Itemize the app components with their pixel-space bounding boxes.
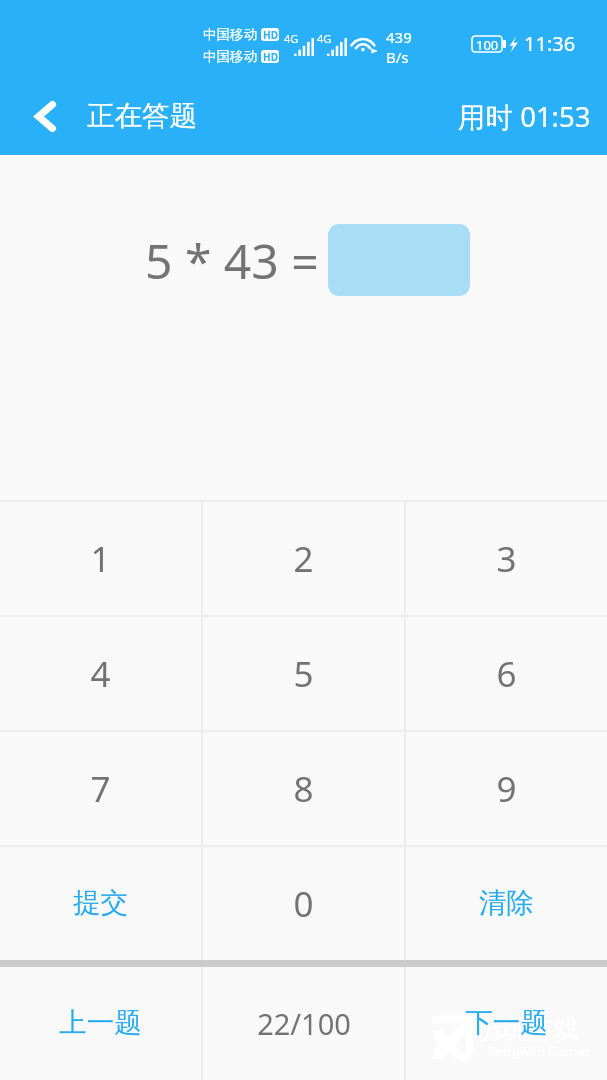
staticText: 用时 01:53 bbox=[458, 98, 591, 136]
staticText: 100 bbox=[476, 36, 499, 52]
button[interactable]: 3 bbox=[406, 502, 607, 615]
staticText: 3 bbox=[496, 535, 517, 583]
button[interactable]: 6 bbox=[406, 617, 607, 730]
staticText: 中国移动 bbox=[203, 26, 257, 43]
button[interactable]: 1 bbox=[0, 502, 201, 615]
staticText: HD bbox=[263, 50, 278, 63]
staticText: 8 bbox=[293, 765, 314, 813]
staticText: 0 bbox=[293, 880, 314, 928]
staticText: 6 bbox=[496, 650, 517, 698]
button[interactable]: 下一题 bbox=[406, 967, 607, 1080]
staticText: 4G bbox=[284, 31, 299, 46]
button[interactable]: 提交 bbox=[0, 847, 201, 960]
staticText: 5 * 43 = bbox=[145, 228, 319, 293]
button[interactable]: Back bbox=[0, 78, 74, 155]
button[interactable]: 4 bbox=[0, 617, 201, 730]
staticText: 1 bbox=[90, 535, 111, 583]
staticText: 仍玩游戏 bbox=[475, 1013, 579, 1046]
staticText: 22/100 bbox=[257, 1004, 351, 1043]
staticText: B/s bbox=[386, 47, 409, 67]
staticText: 上一题 bbox=[59, 1006, 142, 1041]
staticText: 5 bbox=[293, 650, 314, 698]
staticText: 9 bbox=[496, 765, 517, 813]
button[interactable]: 5 bbox=[203, 617, 404, 730]
staticText: 11:36 bbox=[524, 30, 576, 57]
staticText: 4G bbox=[317, 31, 332, 46]
staticText: 4 bbox=[90, 650, 111, 698]
staticText: 清除 bbox=[479, 886, 534, 921]
staticText: 正在答题 bbox=[87, 99, 197, 134]
button[interactable]: Answer input bbox=[328, 224, 470, 296]
staticText: 提交 bbox=[73, 886, 128, 921]
button[interactable]: 9 bbox=[406, 732, 607, 845]
button[interactable]: 22/100 bbox=[203, 967, 404, 1080]
staticText: 439 bbox=[386, 27, 412, 47]
staticText: 2 bbox=[293, 535, 314, 583]
button[interactable]: 8 bbox=[203, 732, 404, 845]
staticText: 7 bbox=[90, 765, 111, 813]
staticText: 中国移动 bbox=[203, 48, 257, 65]
staticText: 下一题 bbox=[465, 1006, 548, 1041]
button[interactable]: 2 bbox=[203, 502, 404, 615]
button[interactable]: 0 bbox=[203, 847, 404, 960]
staticText: HD bbox=[263, 28, 278, 41]
button[interactable]: 上一题 bbox=[0, 967, 201, 1080]
button[interactable]: 7 bbox=[0, 732, 201, 845]
button[interactable]: 清除 bbox=[406, 847, 607, 960]
